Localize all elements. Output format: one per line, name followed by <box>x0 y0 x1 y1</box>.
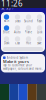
staticText: Cast <box>15 41 20 45</box>
staticText: Android System <box>7 56 28 59</box>
staticText: Data <box>15 19 20 23</box>
staticText: Make it yours <box>3 59 29 64</box>
button[interactable]: Wi-Fi <box>1 13 12 24</box>
staticText: Auto <box>14 30 21 34</box>
button[interactable]: Save <box>34 35 45 46</box>
staticText: Sat, Sep 7 <box>1 7 14 10</box>
staticText: Tap to customise your wallpaper, colours… <box>3 63 43 70</box>
staticText: Sound <box>24 19 33 23</box>
staticText: Wi-Fi <box>3 19 9 23</box>
button[interactable]: Blue <box>1 24 12 35</box>
button[interactable]: Hot <box>23 35 34 46</box>
button[interactable]: Lock <box>34 24 45 35</box>
staticText: Dark <box>4 41 9 45</box>
button[interactable]: Cast <box>12 35 23 46</box>
button[interactable]: Data <box>12 13 23 24</box>
staticText: Blue <box>3 30 10 34</box>
staticText: Save <box>37 41 42 45</box>
staticText: 11:26 <box>1 0 23 9</box>
button[interactable]: Flash <box>34 13 45 24</box>
button[interactable]: Sound <box>23 13 34 24</box>
button[interactable]: Plane <box>23 24 34 35</box>
staticText: Lock <box>37 30 42 34</box>
staticText: Flash <box>36 19 42 23</box>
button[interactable]: Auto <box>12 24 23 35</box>
button[interactable]: Dark <box>1 35 12 46</box>
staticText: Hot <box>26 41 31 45</box>
staticText: Plane <box>24 30 32 34</box>
